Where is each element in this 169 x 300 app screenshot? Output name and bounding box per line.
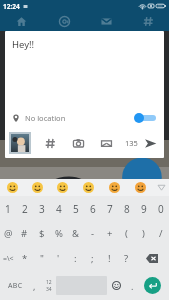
staticText: 1 xyxy=(5,202,11,216)
staticText: * xyxy=(22,252,28,265)
button[interactable]: 0 xyxy=(152,196,169,221)
button[interactable]: $ xyxy=(33,221,50,246)
button[interactable]: 7 xyxy=(101,196,118,221)
staticText: ' xyxy=(57,252,60,265)
staticText: 7 xyxy=(107,202,113,216)
staticText: : xyxy=(74,252,77,265)
button[interactable]: 8 xyxy=(118,196,135,221)
button[interactable]: Attached photo xyxy=(9,132,31,154)
button[interactable]: Backspace xyxy=(135,246,169,271)
button[interactable]: Enter xyxy=(144,277,161,294)
button[interactable]: & xyxy=(67,221,84,246)
staticText: 12 xyxy=(46,279,52,286)
button[interactable]: 3 xyxy=(33,196,50,221)
staticText: % xyxy=(55,227,63,240)
staticText: & xyxy=(72,227,79,240)
staticText: 6 xyxy=(90,202,96,216)
button[interactable]: / xyxy=(152,221,169,246)
button[interactable]: Mentions xyxy=(43,12,85,31)
button[interactable]: 5 xyxy=(67,196,84,221)
button[interactable]: Emoji 3 xyxy=(50,179,75,196)
staticText: 12:24 xyxy=(3,2,20,11)
staticText: =\< xyxy=(3,254,14,264)
button[interactable]: Trends xyxy=(127,12,169,31)
staticText: 8 xyxy=(124,202,130,216)
button[interactable]: More emoji xyxy=(153,179,169,196)
staticText: ; xyxy=(91,252,94,265)
staticText: 3 xyxy=(39,202,45,216)
button[interactable]: Emoji 5 xyxy=(101,179,127,196)
staticText: @ xyxy=(4,227,13,240)
button[interactable]: Emoji xyxy=(107,273,125,298)
button[interactable]: 2 xyxy=(16,196,33,221)
button[interactable]: ! xyxy=(101,246,118,271)
staticText: ? xyxy=(124,252,129,265)
staticText: # xyxy=(21,227,28,240)
staticText: 5 xyxy=(73,202,79,216)
button[interactable]: Period xyxy=(125,273,139,298)
staticText: 135 xyxy=(125,138,138,148)
button[interactable]: Messages xyxy=(85,12,127,31)
staticText: + xyxy=(107,227,113,240)
button[interactable]: " xyxy=(33,246,50,271)
staticText: Hey!! xyxy=(12,38,35,51)
button[interactable]: Hashtag xyxy=(41,134,59,152)
button[interactable]: ; xyxy=(84,246,101,271)
button[interactable]: 4 xyxy=(50,196,67,221)
button[interactable]: * xyxy=(16,246,33,271)
button[interactable]: ( xyxy=(118,221,135,246)
staticText: 0 xyxy=(158,202,164,216)
staticText: . xyxy=(131,280,134,292)
button[interactable]: 9 xyxy=(135,196,152,221)
button[interactable]: @ xyxy=(0,221,16,246)
staticText: / xyxy=(159,227,163,240)
staticText: , xyxy=(33,280,36,292)
button[interactable]: Symbols xyxy=(0,246,16,271)
button[interactable]: ' xyxy=(50,246,67,271)
staticText: $ xyxy=(39,227,45,240)
button[interactable]: + xyxy=(101,221,118,246)
staticText: No location xyxy=(25,113,66,123)
button[interactable]: ? xyxy=(118,246,135,271)
staticText: ) xyxy=(142,227,145,240)
button[interactable]: No location xyxy=(5,108,164,128)
button[interactable]: Direct message xyxy=(97,134,115,152)
button[interactable]: Emoji 4 xyxy=(75,179,101,196)
button[interactable]: # xyxy=(16,221,33,246)
button[interactable]: Emoji 6 xyxy=(127,179,153,196)
staticText: - xyxy=(91,227,95,240)
staticText: 9 xyxy=(141,202,147,216)
button[interactable]: : xyxy=(67,246,84,271)
button[interactable]: - xyxy=(84,221,101,246)
button[interactable]: Send xyxy=(142,135,158,151)
staticText: " xyxy=(40,252,44,265)
button[interactable]: Home xyxy=(0,12,43,31)
button[interactable]: 6 xyxy=(84,196,101,221)
button[interactable]: ABC xyxy=(3,273,27,298)
staticText: ! xyxy=(108,252,111,265)
staticText: 34 xyxy=(46,286,52,293)
staticText: ( xyxy=(125,227,128,240)
staticText: 4 xyxy=(56,202,62,216)
button[interactable]: Camera xyxy=(69,134,87,152)
button[interactable]: % xyxy=(50,221,67,246)
button[interactable]: Emoji 1 xyxy=(0,179,25,196)
button[interactable]: ) xyxy=(135,221,152,246)
button[interactable]: Numbers xyxy=(41,273,56,298)
button[interactable]: 1 xyxy=(0,196,16,221)
staticText: 2 xyxy=(22,202,28,216)
button[interactable]: Comma xyxy=(27,273,41,298)
button[interactable]: Emoji 2 xyxy=(25,179,50,196)
staticText: ABC xyxy=(8,281,23,291)
